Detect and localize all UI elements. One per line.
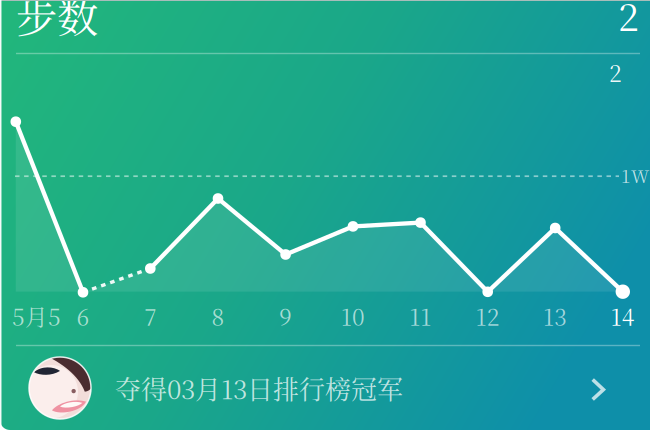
staticText: 7: [144, 300, 156, 332]
staticText: 14: [611, 300, 635, 332]
staticText: 10: [341, 300, 365, 332]
staticText: 2: [618, 0, 639, 42]
staticText: 9: [279, 300, 292, 332]
staticText: 12: [476, 300, 500, 332]
staticText: 8: [211, 300, 224, 332]
staticText: 5月5: [12, 300, 61, 332]
staticText: 步数: [16, 0, 98, 44]
staticText: 13: [543, 300, 567, 332]
staticText: 11: [409, 300, 431, 332]
staticText: 2: [609, 56, 622, 89]
staticText: 6: [76, 300, 89, 332]
staticText: 夺得03月13日排行榜冠军: [115, 369, 403, 407]
staticText: 1W: [621, 163, 649, 188]
button[interactable]: 夺得03月13日排行榜冠军: [0, 346, 650, 430]
